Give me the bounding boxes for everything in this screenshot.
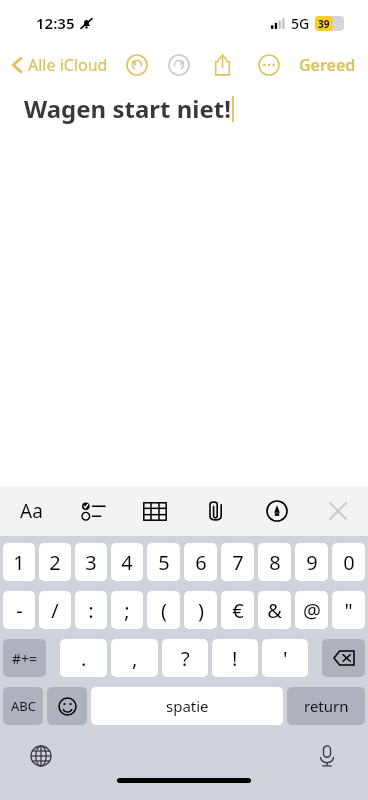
staticText: 5: [158, 549, 170, 576]
button[interactable]: 3: [75, 543, 107, 581]
staticText: ?: [181, 645, 190, 672]
button[interactable]: Undo: [122, 50, 152, 80]
button[interactable]: 6: [184, 543, 217, 581]
button[interactable]: Emoji: [47, 687, 87, 725]
staticText: :: [88, 597, 94, 624]
button[interactable]: Change keyboard: [26, 741, 56, 771]
button[interactable]: Markup: [246, 486, 307, 536]
button[interactable]: Checklist: [62, 486, 124, 536]
staticText: #+=: [12, 649, 38, 668]
button[interactable]: ': [262, 639, 308, 677]
staticText: Alle iCloud: [28, 54, 108, 76]
button[interactable]: ABC: [3, 687, 43, 725]
staticText: ": [344, 597, 353, 624]
staticText: !: [232, 645, 238, 672]
button[interactable]: !: [212, 639, 258, 677]
button[interactable]: 8: [258, 543, 291, 581]
staticText: ': [283, 645, 288, 672]
staticText: 39: [318, 17, 330, 31]
button[interactable]: Table: [124, 486, 185, 536]
button[interactable]: More: [253, 49, 285, 81]
staticText: 4: [121, 549, 133, 576]
staticText: 5G: [291, 14, 310, 33]
staticText: 9: [306, 549, 318, 576]
staticText: @: [303, 597, 321, 624]
button[interactable]: Redo: [164, 50, 194, 80]
staticText: 2: [49, 549, 61, 576]
staticText: €: [232, 597, 244, 624]
button[interactable]: 1: [3, 543, 35, 581]
staticText: 7: [232, 549, 244, 576]
button[interactable]: #+=: [3, 639, 46, 677]
button[interactable]: 4: [111, 543, 143, 581]
button[interactable]: ": [332, 591, 365, 629]
button[interactable]: €: [221, 591, 254, 629]
button[interactable]: Text format: [0, 486, 62, 536]
staticText: (: [161, 597, 167, 624]
staticText: ;: [124, 597, 130, 624]
staticText: ,: [132, 645, 138, 672]
staticText: .: [81, 645, 87, 672]
button[interactable]: ;: [111, 591, 143, 629]
button[interactable]: @: [295, 591, 328, 629]
button[interactable]: Close keyboard: [307, 486, 368, 536]
staticText: 0: [343, 549, 355, 576]
button[interactable]: (: [147, 591, 180, 629]
button[interactable]: Dictate: [312, 741, 342, 771]
staticText: &: [267, 597, 282, 624]
staticText: return: [304, 696, 349, 716]
button[interactable]: -: [3, 591, 35, 629]
button[interactable]: Backspace: [322, 639, 365, 677]
staticText: 12:35: [36, 13, 75, 33]
button[interactable]: 2: [39, 543, 71, 581]
staticText: /: [51, 597, 59, 624]
button[interactable]: ): [184, 591, 217, 629]
staticText: ABC: [11, 697, 36, 715]
button[interactable]: Share: [205, 48, 239, 82]
button[interactable]: spatie: [91, 687, 283, 725]
button[interactable]: 9: [295, 543, 328, 581]
staticText: ): [198, 597, 204, 624]
button[interactable]: return: [287, 687, 365, 725]
button[interactable]: Attach: [185, 486, 246, 536]
staticText: 8: [269, 549, 281, 576]
button[interactable]: Gereed: [295, 50, 360, 80]
staticText: Wagen start niet!: [24, 92, 231, 125]
button[interactable]: ,: [111, 639, 158, 677]
button[interactable]: /: [39, 591, 71, 629]
button[interactable]: :: [75, 591, 107, 629]
staticText: 1: [13, 549, 25, 576]
staticText: 6: [195, 549, 207, 576]
staticText: spatie: [166, 696, 209, 716]
staticText: -: [16, 597, 23, 624]
button[interactable]: 0: [332, 543, 365, 581]
button[interactable]: &: [258, 591, 291, 629]
button[interactable]: Alle iCloud: [8, 50, 112, 80]
button[interactable]: 7: [221, 543, 254, 581]
staticText: Aa: [20, 498, 43, 524]
button[interactable]: ?: [162, 639, 208, 677]
button[interactable]: .: [60, 639, 107, 677]
staticText: Gereed: [299, 54, 356, 76]
button[interactable]: 5: [147, 543, 180, 581]
staticText: 3: [85, 549, 97, 576]
